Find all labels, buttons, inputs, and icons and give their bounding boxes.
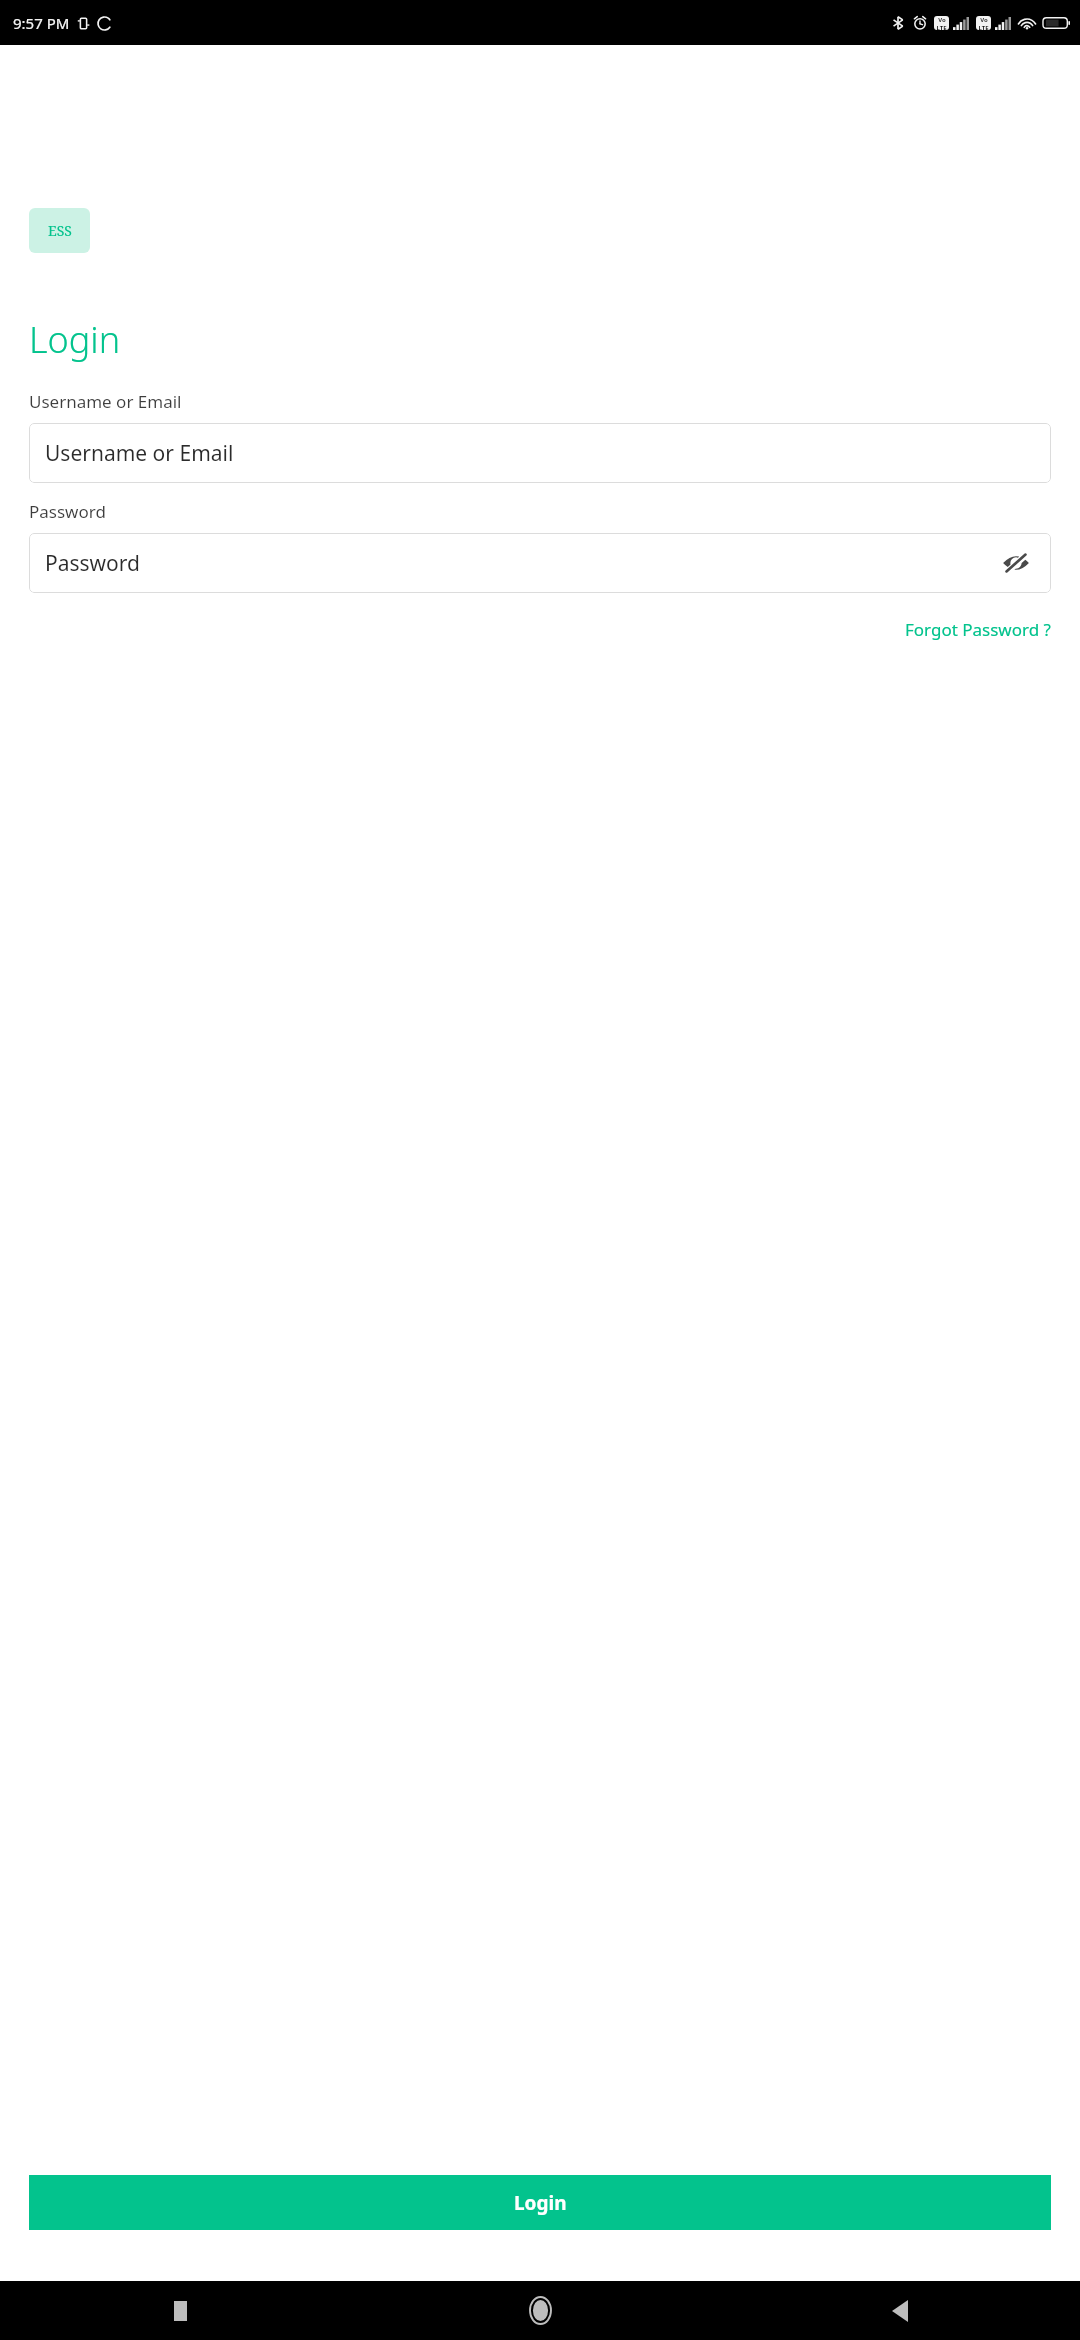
staticText: Password	[45, 549, 140, 578]
button[interactable]: Username or Email	[29, 423, 1051, 483]
staticText: Vo	[980, 16, 988, 24]
staticText: Username or Email	[29, 390, 182, 413]
staticText: Login	[514, 2190, 567, 2216]
staticText: LTE	[978, 24, 989, 30]
staticText: Login	[29, 315, 121, 364]
button[interactable]: Password	[29, 533, 1051, 593]
staticText: Vo	[938, 16, 946, 24]
staticText: ESS	[48, 221, 72, 240]
staticText: Username or Email	[45, 439, 234, 468]
button[interactable]: Forgot Password ?	[905, 618, 1051, 641]
button[interactable]: ESS	[29, 208, 90, 253]
button[interactable]: Recent apps	[0, 2281, 360, 2340]
staticText: Forgot Password ?	[905, 618, 1051, 641]
staticText: 9:57 PM	[13, 13, 70, 33]
button[interactable]: Home	[360, 2281, 720, 2340]
staticText: Password	[29, 500, 106, 523]
button[interactable]: Back	[720, 2281, 1080, 2340]
button[interactable]: Login	[29, 2175, 1051, 2230]
button[interactable]: Show password	[999, 546, 1033, 580]
staticText: LTE	[936, 24, 947, 30]
